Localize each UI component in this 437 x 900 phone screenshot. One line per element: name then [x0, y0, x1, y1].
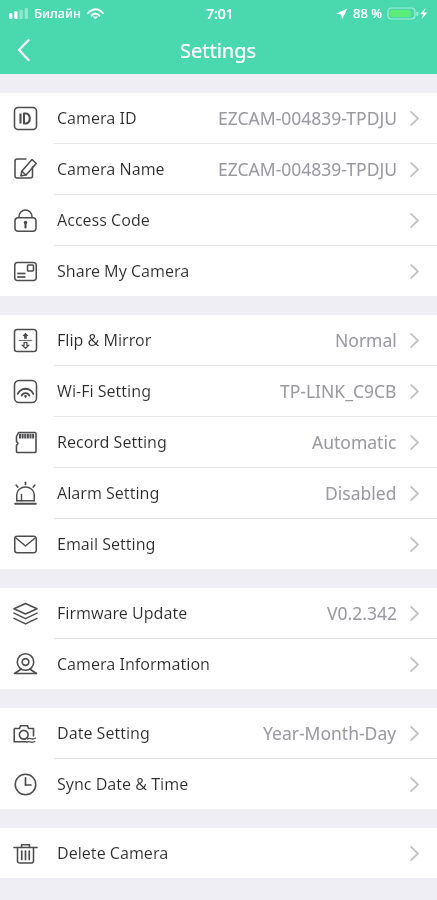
staticText: V0.2.342 — [327, 601, 397, 625]
button[interactable]: Sync Date & Time — [0, 759, 437, 809]
staticText: Year-Month-Day — [263, 721, 397, 745]
staticText: Firmware Update — [57, 602, 188, 624]
staticText: Date Setting — [57, 722, 150, 744]
staticText: Email Setting — [57, 533, 156, 555]
button[interactable]: Share My Camera — [0, 246, 437, 296]
staticText: 88 % — [353, 4, 383, 22]
staticText: EZCAM-004839-TPDJU — [218, 106, 397, 130]
staticText: Camera ID — [57, 107, 137, 129]
button[interactable]: Wi-Fi Setting — [0, 366, 437, 416]
staticText: Билайн — [34, 4, 81, 22]
button[interactable]: Camera ID — [0, 93, 437, 143]
button[interactable]: Delete Camera — [0, 828, 437, 878]
staticText: Access Code — [57, 209, 150, 231]
staticText: Normal — [335, 328, 397, 352]
button[interactable]: Camera Name — [0, 144, 437, 194]
staticText: Automatic — [312, 430, 397, 454]
button[interactable]: Back — [0, 26, 48, 74]
staticText: TP-LINK_C9CB — [280, 379, 397, 403]
staticText: Wi-Fi Setting — [57, 380, 151, 402]
staticText: Sync Date & Time — [57, 773, 189, 795]
staticText: EZCAM-004839-TPDJU — [218, 157, 397, 181]
button[interactable]: Email Setting — [0, 519, 437, 569]
staticText: Camera Name — [57, 158, 165, 180]
staticText: Delete Camera — [57, 842, 169, 864]
staticText: 7:01 — [206, 4, 234, 23]
staticText: Camera Information — [57, 653, 211, 675]
button[interactable]: Firmware Update — [0, 588, 437, 638]
button[interactable]: Alarm Setting — [0, 468, 437, 518]
staticText: Record Setting — [57, 431, 167, 453]
staticText: Share My Camera — [57, 260, 190, 282]
staticText: Disabled — [325, 481, 397, 505]
button[interactable]: Date Setting — [0, 708, 437, 758]
staticText: Settings — [180, 37, 257, 64]
staticText: Alarm Setting — [57, 482, 160, 504]
button[interactable]: Access Code — [0, 195, 437, 245]
staticText: Flip & Mirror — [57, 329, 152, 351]
button[interactable]: Record Setting — [0, 417, 437, 467]
button[interactable]: Camera Information — [0, 639, 437, 689]
button[interactable]: Flip & Mirror — [0, 315, 437, 365]
